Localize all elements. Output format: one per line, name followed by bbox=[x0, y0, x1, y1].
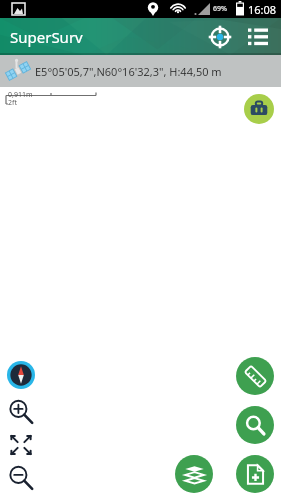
button[interactable]: Full extent bbox=[5, 429, 37, 461]
button[interactable]: Measure bbox=[236, 357, 274, 395]
staticText: 0,911m bbox=[8, 90, 33, 100]
button[interactable]: Toolbox bbox=[244, 94, 274, 124]
button[interactable]: E5°05'05,7",N60°16'32,3", H:44,50 m bbox=[0, 55, 281, 87]
button[interactable]: Layers bbox=[175, 455, 213, 493]
staticText: 2ft bbox=[8, 98, 17, 108]
staticText: 16:08 bbox=[248, 2, 277, 17]
staticText: 69% bbox=[213, 4, 227, 14]
staticText: E5°05'05,7",N60°16'32,3", H:44,50 m bbox=[35, 64, 222, 79]
staticText: SuperSurv bbox=[10, 27, 83, 47]
button[interactable]: New file bbox=[236, 455, 274, 493]
button[interactable]: Menu bbox=[241, 20, 275, 54]
button[interactable]: Zoom in bbox=[5, 396, 37, 428]
button[interactable]: My location bbox=[203, 20, 237, 54]
button[interactable]: Search bbox=[236, 406, 274, 444]
button[interactable]: Compass bbox=[4, 358, 38, 392]
button[interactable]: Zoom out bbox=[5, 462, 37, 494]
